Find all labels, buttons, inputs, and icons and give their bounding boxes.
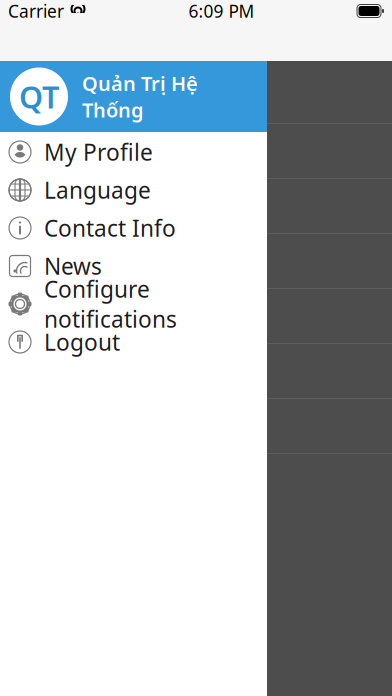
staticText: QT [19,76,59,117]
staticText: 6:09 PM [188,0,254,22]
button[interactable]: Logout [0,323,267,361]
button[interactable]: News [0,247,267,285]
staticText: Language [44,175,151,205]
staticText: News [44,251,102,281]
button[interactable]: Configure notifications [0,285,267,323]
staticText: Contact Info [44,213,176,243]
staticText: Carrier [8,0,64,22]
button[interactable]: My Profile [0,133,267,171]
staticText: My Profile [44,137,153,167]
button[interactable]: Contact Info [0,209,267,247]
staticText: Quản Trị Hệ Thống [82,70,198,123]
staticText: Logout [44,327,120,357]
button[interactable]: Language [0,171,267,209]
staticText: Configure notifications [44,274,177,334]
staticText: QUẢN TRỊ HỆ THỐNG SYSTEM [16,81,265,104]
